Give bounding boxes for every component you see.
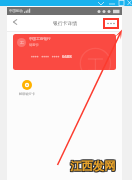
staticText: 江西发网 <box>70 160 116 174</box>
staticText: 解绑银行卡 <box>19 92 35 96</box>
staticText: 中国工商银行 <box>29 37 51 42</box>
staticText: 江西发网 <box>69 160 115 174</box>
staticText: 江西发网 <box>69 159 115 173</box>
button[interactable]: Back <box>9 16 21 28</box>
staticText: 江西发网 <box>70 158 116 172</box>
staticText: 江西发网 <box>71 159 117 173</box>
staticText: 储蓄卡 <box>29 43 39 47</box>
staticText: 中国移动 <box>9 9 23 13</box>
staticText: 江西发网 <box>70 159 116 173</box>
button[interactable]: 解绑银行卡 <box>15 80 39 96</box>
staticText: 江西发网 <box>69 158 115 172</box>
button[interactable]: 工 <box>13 34 116 70</box>
staticText: 银行卡详情 <box>53 20 77 26</box>
button[interactable]: More options <box>104 19 118 28</box>
staticText: 工 <box>20 40 24 45</box>
staticText: 江西发网 <box>71 160 117 174</box>
staticText: 江西发网 <box>71 158 117 172</box>
staticText: 6688 <box>62 54 72 60</box>
